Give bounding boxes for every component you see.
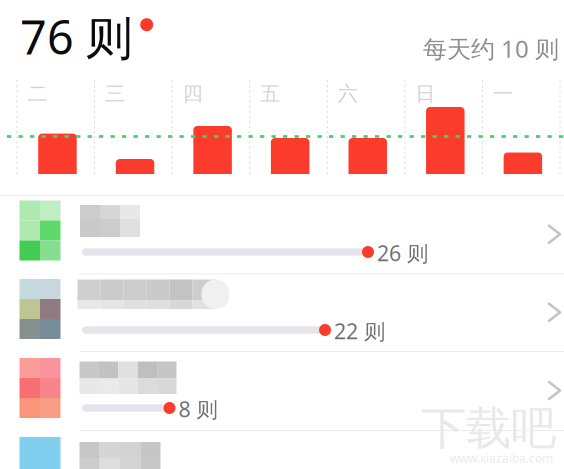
staticText: 下载吧 xyxy=(421,401,556,456)
staticText: 76 则 xyxy=(20,5,133,67)
staticText: 26 则 xyxy=(377,239,428,267)
button[interactable] xyxy=(0,0,564,469)
button[interactable]: 26 则 xyxy=(0,0,564,469)
staticText: 二 xyxy=(27,81,47,106)
button[interactable]: 8 则 xyxy=(0,0,564,469)
staticText: 22 则 xyxy=(334,317,385,345)
staticText: 三 xyxy=(105,81,125,106)
staticText: www.xiazaiba.com xyxy=(450,450,553,466)
staticText: 一 xyxy=(493,81,513,106)
button[interactable]: 22 则 xyxy=(0,0,564,469)
staticText: 8 则 xyxy=(178,395,217,423)
staticText: 日 xyxy=(415,81,435,106)
staticText: 四 xyxy=(183,81,203,106)
staticText: 五 xyxy=(260,81,280,106)
staticText: 每天约 10 则 xyxy=(423,33,559,64)
staticText: 六 xyxy=(338,81,358,106)
